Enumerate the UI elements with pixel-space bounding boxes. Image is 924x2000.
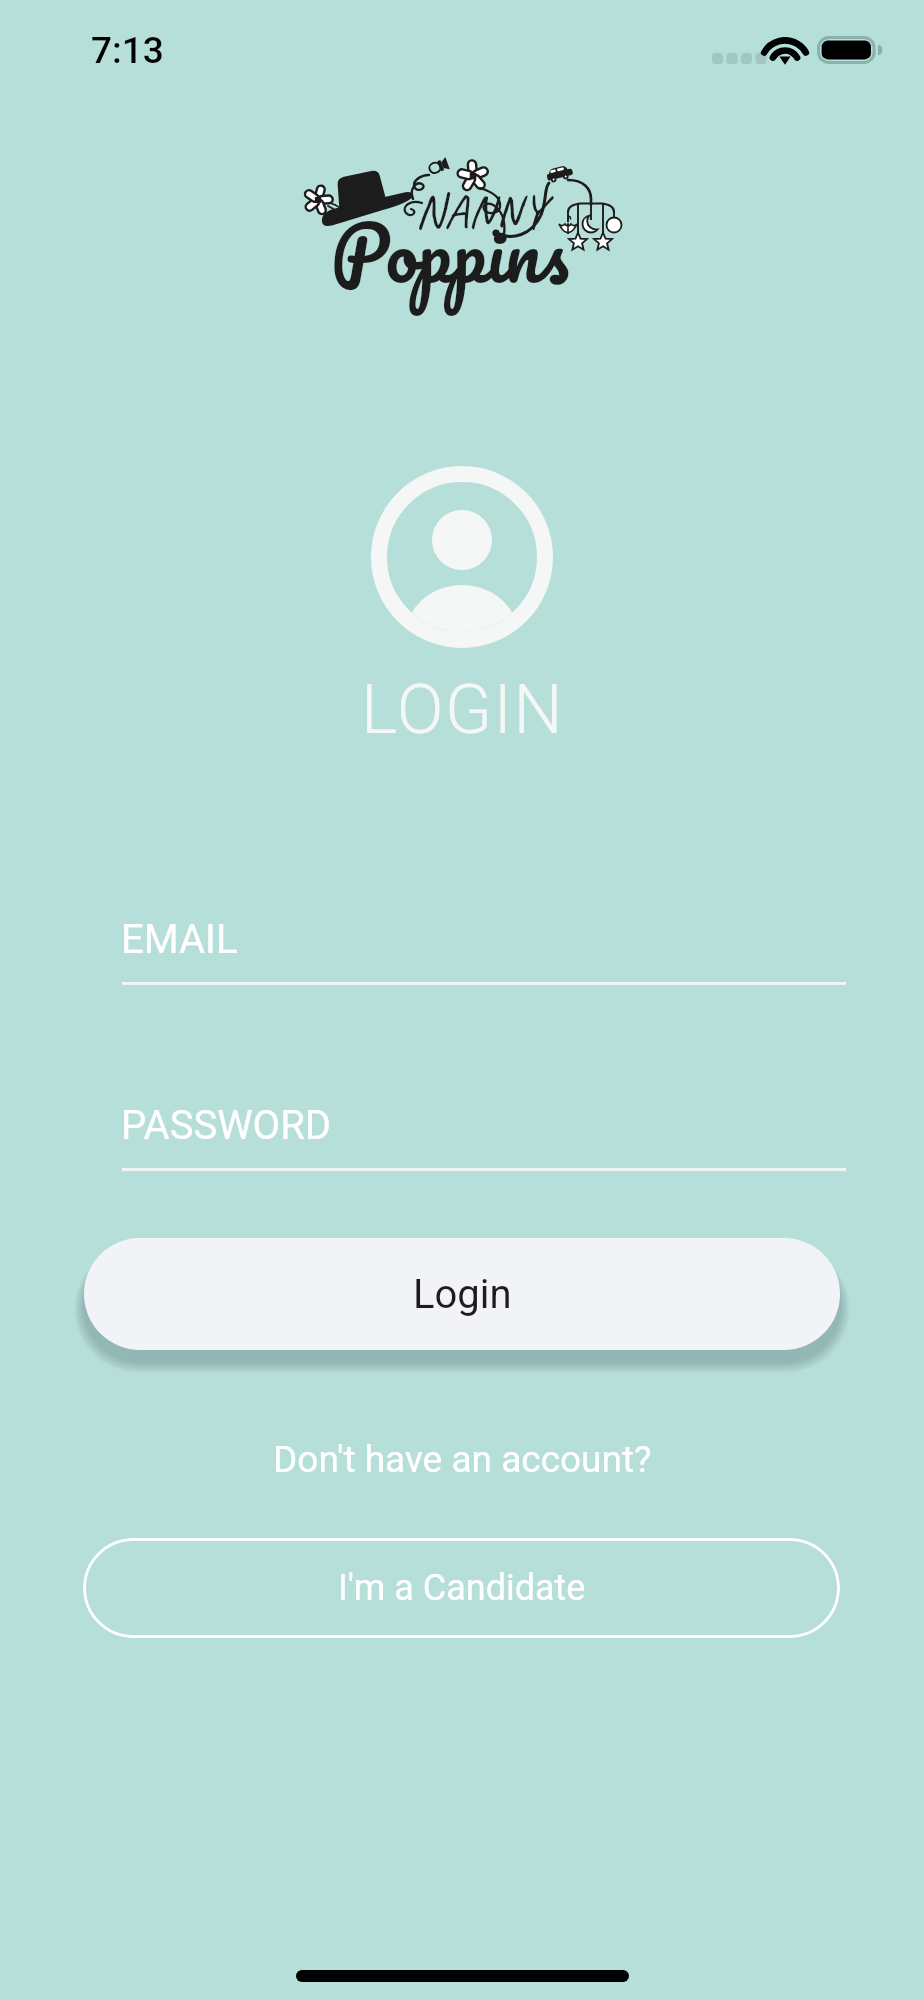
button[interactable]: PASSWORD (121, 1080, 846, 1174)
button[interactable]: I'm a Candidate (83, 1538, 840, 1638)
button[interactable]: Don't have an account? (262, 1431, 662, 1487)
staticText: I'm a Candidate (338, 1567, 586, 1609)
other: Nanny Poppins logo (300, 155, 650, 300)
staticText: Login (413, 1271, 512, 1318)
button[interactable]: EMAIL (121, 894, 846, 988)
staticText: 7:13 (91, 29, 164, 72)
staticText: Don't have an account? (273, 1438, 652, 1481)
other: Account avatar (371, 466, 553, 648)
staticText: EMAIL (121, 916, 238, 963)
staticText: Poppins (331, 189, 569, 315)
staticText: LOGIN (361, 669, 564, 750)
button[interactable]: Login (84, 1238, 840, 1350)
staticText: PASSWORD (121, 1102, 332, 1149)
staticText: NANNY (415, 181, 546, 241)
